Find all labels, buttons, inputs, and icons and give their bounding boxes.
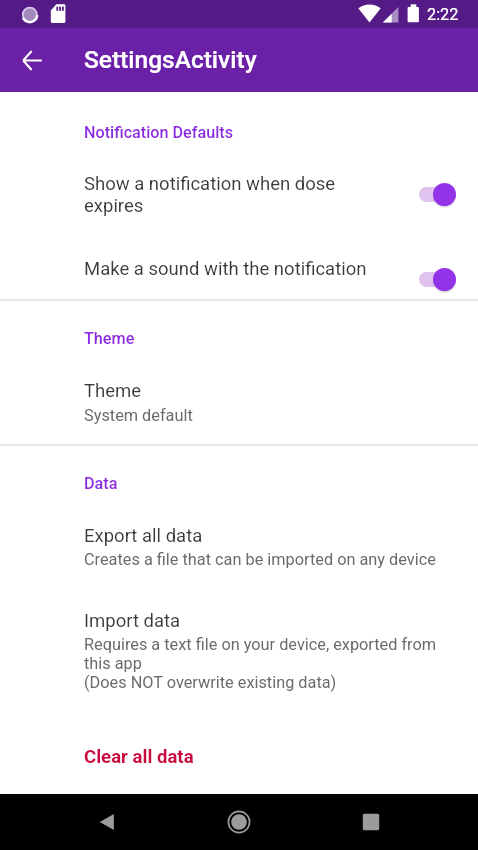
staticText: 2:22 <box>427 5 459 24</box>
staticText: Notification Defaults <box>84 123 234 142</box>
button[interactable] <box>0 512 478 574</box>
button[interactable]: Clear all data <box>0 735 478 779</box>
staticText: Make a sound with the notification <box>84 258 379 280</box>
staticText: Theme <box>84 380 142 402</box>
button[interactable] <box>0 366 478 428</box>
staticText: Requires a text file on your device, exp… <box>84 635 442 692</box>
button[interactable]: Home <box>215 798 263 846</box>
button[interactable] <box>0 160 478 228</box>
button[interactable]: Recent apps <box>347 798 395 846</box>
staticText: Show a notification when dose expires <box>84 173 379 217</box>
staticText: Export all data <box>84 525 203 547</box>
staticText: System default <box>84 406 442 425</box>
staticText: Theme <box>84 329 135 348</box>
button[interactable]: Back <box>83 798 131 846</box>
button[interactable]: Navigate up <box>12 40 52 80</box>
staticText: SettingsActivity <box>84 45 257 74</box>
staticText: Creates a file that can be imported on a… <box>84 550 442 569</box>
staticText: Data <box>84 474 118 493</box>
staticText: Clear all data <box>84 746 194 768</box>
button[interactable] <box>0 597 478 697</box>
staticText: Import data <box>84 610 181 632</box>
button[interactable] <box>0 240 478 294</box>
